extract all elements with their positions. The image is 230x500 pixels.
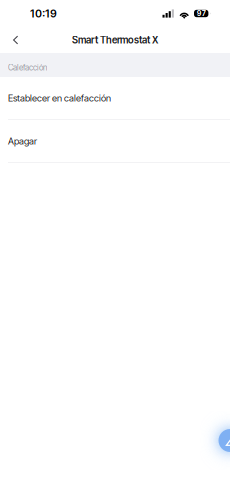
button[interactable]: Back bbox=[0, 28, 28, 51]
staticText: Establecer en calefacción bbox=[8, 92, 111, 104]
staticText: Apagar bbox=[8, 135, 37, 147]
staticText: 10:19 bbox=[30, 7, 57, 20]
button[interactable]: Assistant bbox=[218, 429, 230, 452]
staticText: Calefacción bbox=[8, 63, 47, 72]
button[interactable]: Apagar bbox=[0, 120, 230, 163]
button[interactable]: Establecer en calefacción bbox=[0, 77, 230, 120]
staticText: Smart Thermostat X bbox=[72, 34, 158, 46]
staticText: 97 bbox=[197, 9, 206, 18]
